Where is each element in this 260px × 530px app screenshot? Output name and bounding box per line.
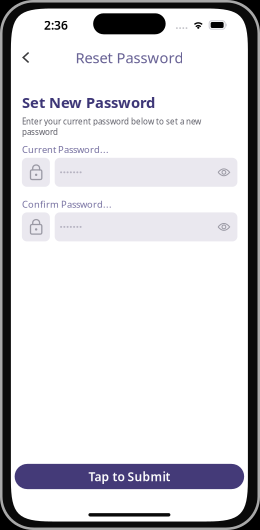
button[interactable]: Show current password — [212, 158, 236, 187]
staticText: Confirm Password... — [22, 198, 112, 210]
staticText: Current Password... — [22, 143, 109, 156]
button[interactable]: Show confirm password — [212, 212, 236, 241]
button[interactable]: Tap to Submit — [15, 464, 244, 489]
staticText: Set New Password — [22, 92, 155, 112]
staticText: Enter your current password below to set… — [22, 116, 201, 137]
staticText: Tap to Submit — [88, 468, 170, 484]
staticText: Reset Password — [75, 48, 183, 67]
button[interactable]: Back — [14, 44, 38, 70]
staticText: 2:36 — [44, 17, 68, 33]
